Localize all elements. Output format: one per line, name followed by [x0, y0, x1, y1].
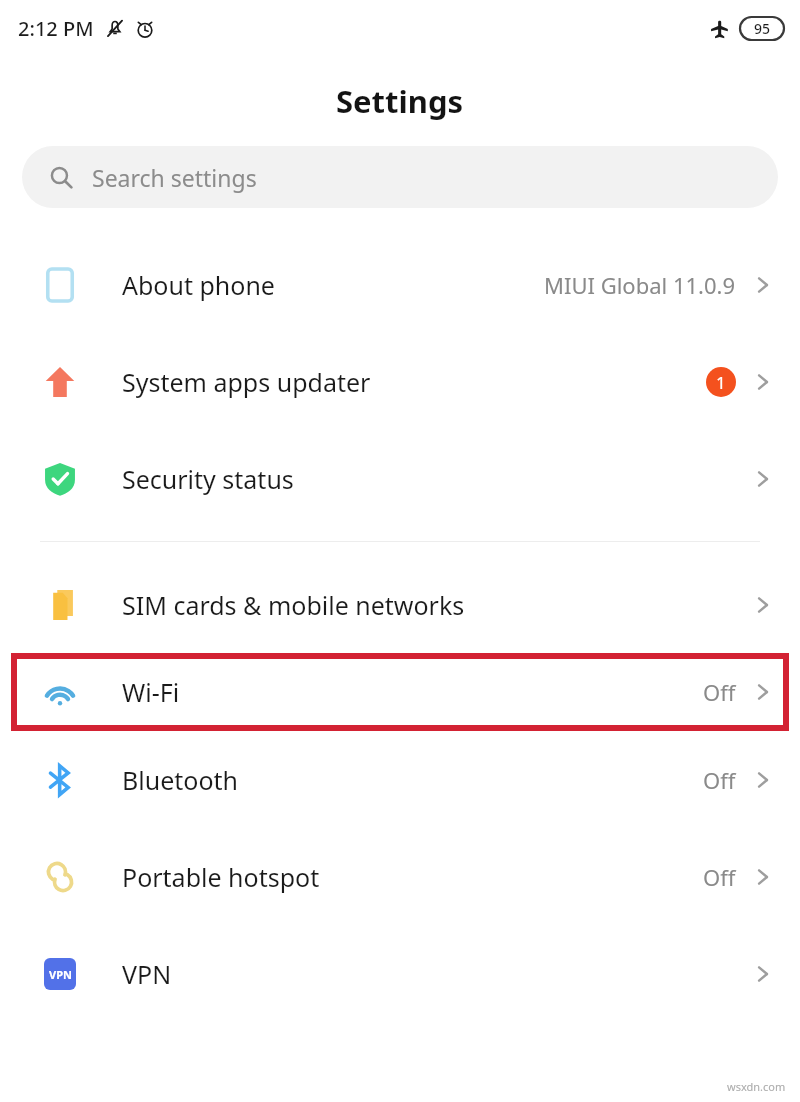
button[interactable]: SIM cards & mobile networks: [0, 556, 800, 653]
staticText: VPN: [122, 957, 172, 991]
staticText: Portable hotspot: [122, 860, 320, 894]
staticText: Off: [703, 765, 736, 795]
button[interactable]: Portable hotspot: [0, 828, 800, 925]
staticText: Off: [703, 677, 736, 707]
staticText: Bluetooth: [122, 763, 239, 797]
staticText: Wi-Fi: [122, 675, 180, 709]
button[interactable]: About phone: [0, 236, 800, 333]
staticText: MIUI Global 11.0.9: [544, 270, 736, 300]
staticText: VPN: [49, 967, 72, 982]
staticText: Settings: [336, 80, 464, 122]
button[interactable]: Wi-Fi: [0, 653, 800, 731]
staticText: 95: [754, 19, 771, 38]
button[interactable]: Search settings: [22, 146, 778, 208]
staticText: System apps updater: [122, 365, 371, 399]
staticText: About phone: [122, 268, 275, 302]
staticText: SIM cards & mobile networks: [122, 588, 465, 622]
staticText: 2:12 PM: [18, 15, 94, 42]
button[interactable]: VPN: [0, 925, 800, 1022]
staticText: Search settings: [92, 162, 257, 193]
button[interactable]: Security status: [0, 430, 800, 527]
staticText: Off: [703, 862, 736, 892]
button[interactable]: Bluetooth: [0, 731, 800, 828]
button[interactable]: System apps updater: [0, 333, 800, 430]
staticText: 1: [716, 371, 726, 394]
staticText: Security status: [122, 462, 294, 496]
staticText: wsxdn.com: [727, 1079, 786, 1094]
